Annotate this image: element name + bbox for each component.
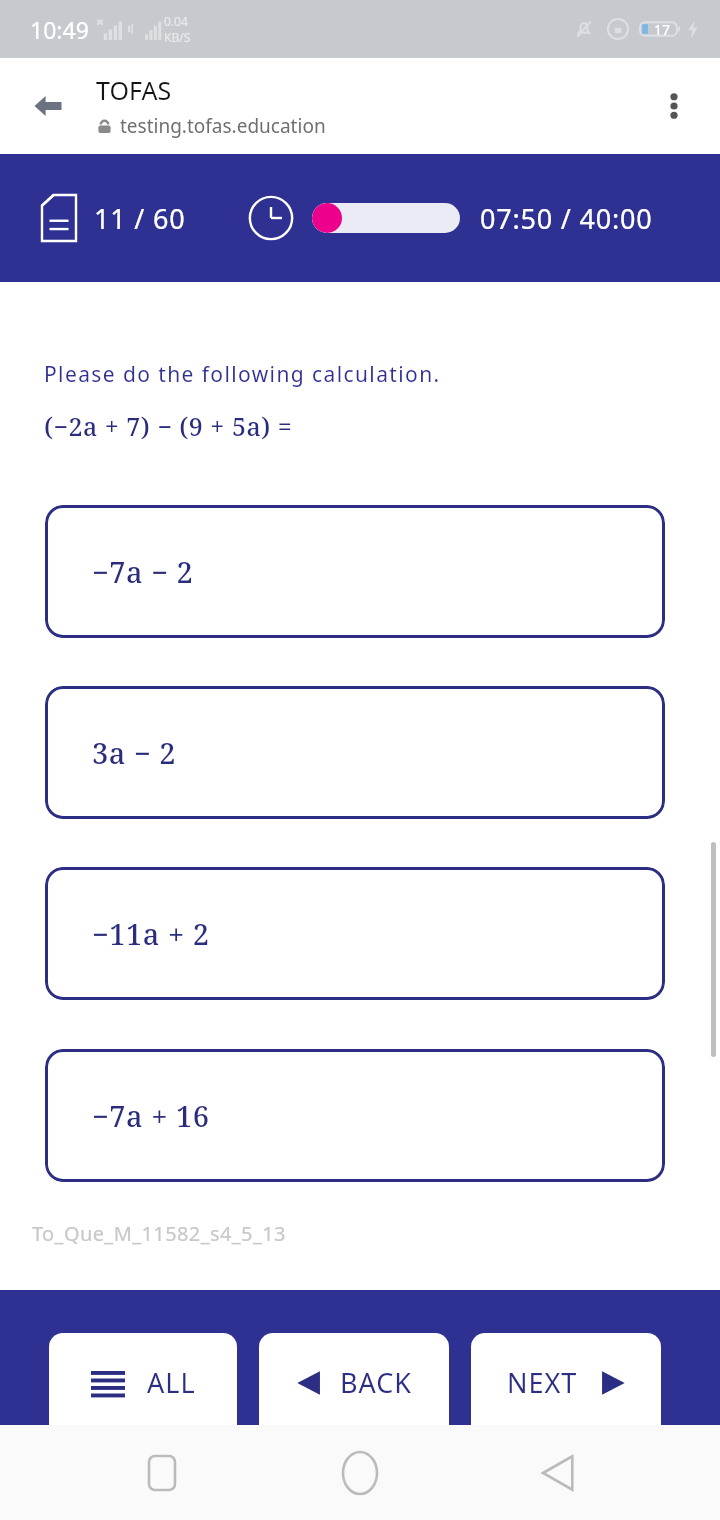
button[interactable]: −11a + 2 (45, 867, 665, 1000)
staticText: KB/S (164, 29, 191, 45)
staticText: TOFAS (96, 73, 172, 107)
button[interactable]: NEXT (471, 1333, 661, 1425)
button[interactable]: More options (646, 78, 702, 134)
staticText: To_Que_M_11582_s4_5_13 (32, 1220, 286, 1247)
button[interactable]: BACK (259, 1333, 449, 1425)
button[interactable]: −7a − 2 (45, 505, 665, 638)
button[interactable]: Back (522, 1437, 594, 1509)
staticText: −11a + 2 (92, 914, 210, 953)
staticText: ALL (147, 1364, 196, 1401)
staticText: 0.04 (164, 13, 188, 29)
staticText: (−2a + 7) − (9 + 5a) = (44, 409, 293, 443)
staticText: BACK (340, 1364, 413, 1401)
staticText: testing.tofas.education (120, 113, 326, 139)
staticText: 3a − 2 (92, 733, 176, 772)
staticText: Please do the following calculation. (44, 360, 441, 389)
button[interactable]: Back (18, 76, 78, 136)
button[interactable]: −7a + 16 (45, 1049, 665, 1182)
staticText: −7a − 2 (92, 552, 194, 591)
staticText: 07:50 / 40:00 (480, 200, 653, 237)
staticText: −7a + 16 (92, 1096, 210, 1135)
staticText: NEXT (507, 1364, 578, 1401)
staticText: 11 / 60 (94, 200, 186, 237)
staticText: 10:49 (30, 14, 89, 45)
button[interactable]: Recent apps (126, 1437, 198, 1509)
button[interactable]: ALL (49, 1333, 237, 1425)
button[interactable]: 3a − 2 (45, 686, 665, 819)
button[interactable]: Home (324, 1437, 396, 1509)
staticText: 17 (654, 20, 671, 39)
